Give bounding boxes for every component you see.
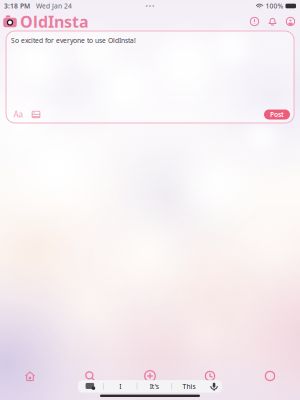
staticText: OldInsta (20, 11, 89, 32)
button[interactable]: Home (0, 366, 60, 386)
button[interactable]: Switch keyboard (78, 380, 103, 392)
staticText: It's (150, 382, 159, 391)
button[interactable]: Search (60, 366, 120, 386)
staticText: Wed Jan 24 (30, 2, 72, 10)
button[interactable]: Profile (240, 366, 300, 386)
button[interactable]: I (104, 380, 137, 392)
button[interactable]: Dictate (206, 380, 222, 392)
button[interactable]: Activity (180, 366, 240, 386)
button[interactable]: Add photo (27, 109, 45, 120)
button[interactable]: Aa (10, 109, 27, 120)
staticText: Aa (13, 109, 23, 120)
button[interactable]: Post (264, 109, 290, 119)
button[interactable]: Notifications (266, 15, 279, 28)
button[interactable]: This (172, 380, 206, 392)
staticText: 100% (263, 2, 283, 10)
button[interactable]: Account (284, 15, 297, 28)
button[interactable]: OldInsta (0, 11, 89, 32)
button[interactable]: New post (120, 366, 180, 386)
button[interactable]: Information (248, 15, 261, 28)
staticText: Post (270, 110, 284, 119)
staticText: 3:18 PM (4, 2, 30, 10)
staticText: This (183, 382, 196, 391)
staticText: I (119, 382, 121, 391)
button[interactable]: It's (137, 380, 171, 392)
staticText: So excited for everyone to use OldInsta! (11, 36, 136, 45)
